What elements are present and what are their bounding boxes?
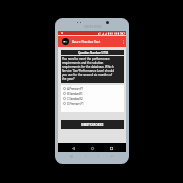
button[interactable]: More options [121, 36, 126, 47]
button[interactable]: Recents [107, 144, 115, 152]
staticText: C. Standard S2 [67, 97, 83, 101]
staticText: SAMSUNG [84, 25, 102, 29]
button[interactable]: B. Standard S1 [63, 91, 124, 96]
button[interactable]: Back [69, 144, 77, 152]
button[interactable]: SUBMIT YOUR CHOICE [61, 120, 124, 129]
button[interactable]: C. Standard S2 [63, 96, 124, 101]
staticText: Question Number: 5/158 [78, 51, 108, 55]
staticText: You need to meet the performance require… [62, 57, 114, 81]
button[interactable]: Azure Practice Test [58, 36, 126, 47]
staticText: Azure Practice Test [72, 40, 101, 44]
button[interactable]: Question Number: 5/158 [61, 50, 124, 55]
button[interactable]: A. Premium P1 [63, 86, 124, 91]
staticText: B. Standard S1 [67, 92, 83, 96]
staticText: SUBMIT YOUR CHOICE [81, 123, 104, 126]
button[interactable]: D. Premium P1 [63, 101, 124, 106]
button[interactable]: Home [88, 144, 96, 152]
staticText: D. Premium P1 [67, 102, 84, 106]
staticText: A. Premium P1 [67, 87, 84, 91]
